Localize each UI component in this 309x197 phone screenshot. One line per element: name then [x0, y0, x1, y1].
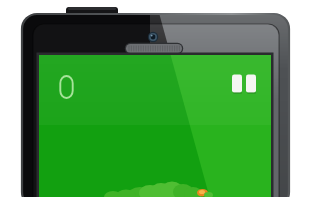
button[interactable]: Tablet showing green game screen [0, 0, 309, 197]
